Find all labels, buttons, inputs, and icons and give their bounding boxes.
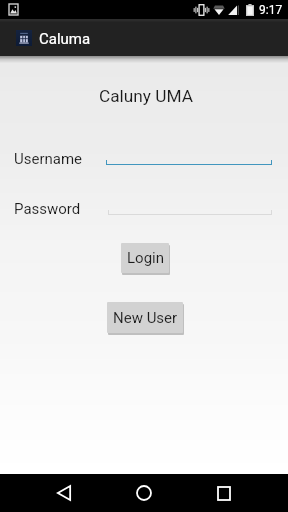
button[interactable]: Login — [121, 243, 169, 273]
staticText: Password — [14, 200, 81, 218]
button[interactable]: New User — [107, 302, 183, 333]
button[interactable] — [108, 202, 272, 218]
button[interactable]: Home — [120, 474, 168, 512]
staticText: 9:17 — [259, 3, 283, 17]
button[interactable] — [106, 152, 272, 168]
staticText: Caluny UMA — [2, 86, 288, 106]
button[interactable]: Recents — [200, 474, 248, 512]
staticText: Caluma — [39, 30, 91, 48]
staticText: Login — [127, 249, 164, 267]
staticText: New User — [113, 309, 178, 327]
staticText: Username — [14, 150, 83, 168]
button[interactable]: Back — [40, 474, 88, 512]
